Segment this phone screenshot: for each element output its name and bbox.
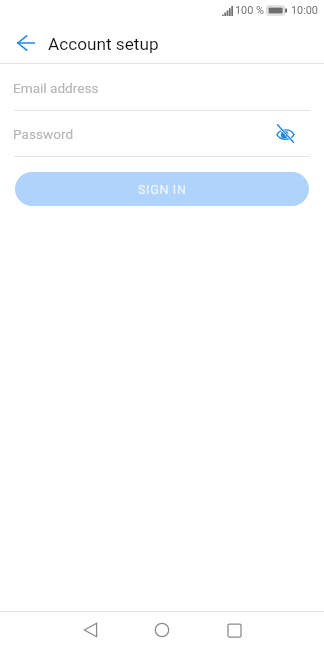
button[interactable]: Back [11, 28, 41, 58]
button[interactable]: SIGN IN [15, 172, 309, 206]
staticText: Account setup [48, 34, 159, 54]
staticText: 100 % [235, 4, 265, 17]
staticText: 10:00 [291, 4, 318, 17]
button[interactable]: Recent apps [198, 612, 270, 648]
button[interactable]: Back [54, 612, 126, 648]
button[interactable]: Show password [272, 120, 298, 146]
staticText: SIGN IN [138, 182, 187, 197]
staticText: Password [13, 126, 74, 142]
button[interactable]: Home [126, 612, 198, 648]
staticText: Email address [13, 80, 99, 96]
